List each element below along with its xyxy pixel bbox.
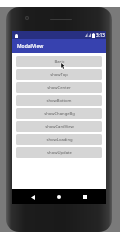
staticText: showTop [50,72,68,78]
button[interactable]: showBottom [16,95,102,106]
button[interactable]: showTop [16,69,102,80]
button[interactable]: showCardView [16,121,102,132]
button[interactable]: Basic [16,56,102,67]
button[interactable]: showCenter [16,82,102,93]
button[interactable]: showLoading [16,134,102,145]
staticText: Basic [54,59,65,65]
button[interactable]: showUpdate [16,147,102,158]
staticText: showBottom [46,98,72,104]
staticText: showCardView [45,124,74,130]
staticText: showCenter [47,85,71,91]
staticText: ModalView [17,43,44,50]
staticText: showUpdate [47,150,72,156]
staticText: showLoading [46,137,73,143]
button[interactable]: Recents [80,192,90,202]
button[interactable]: Back [28,192,38,202]
button[interactable]: Home [54,192,64,202]
staticText: showChangeBg [44,111,75,117]
button[interactable]: showChangeBg [16,108,102,119]
staticText: 3:13 [96,32,105,38]
